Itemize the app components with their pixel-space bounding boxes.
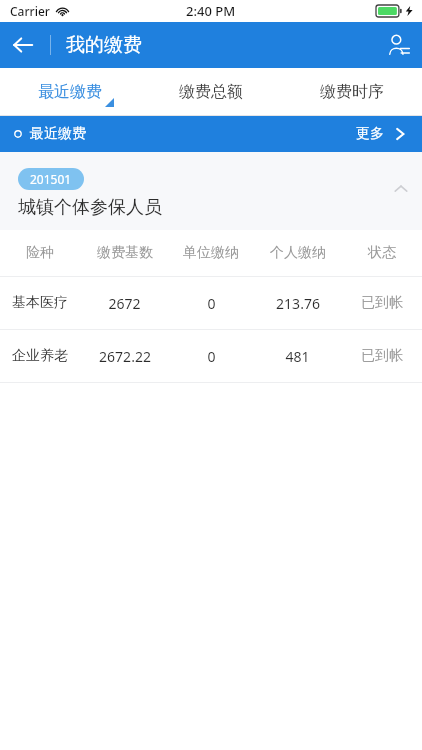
- staticText: 201501: [30, 171, 72, 187]
- staticText: 2:40 PM: [186, 2, 236, 20]
- staticText: 0: [207, 347, 216, 366]
- staticText: 最近缴费: [38, 82, 102, 102]
- staticText: 481: [285, 347, 310, 366]
- button[interactable]: 缴费总额: [140, 68, 281, 115]
- button[interactable]: Account: [376, 22, 422, 68]
- button[interactable]: 企业养老: [0, 330, 422, 382]
- staticText: 更多: [356, 125, 384, 143]
- staticText: 缴费总额: [179, 82, 243, 102]
- staticText: 险种: [26, 244, 54, 262]
- staticText: 已到帐: [361, 347, 403, 365]
- button[interactable]: 最近缴费: [0, 116, 422, 152]
- staticText: 缴费基数: [97, 244, 153, 262]
- staticText: 我的缴费: [66, 33, 142, 57]
- button[interactable]: Back: [0, 22, 46, 68]
- button[interactable]: 基本医疗: [0, 277, 422, 329]
- staticText: 基本医疗: [12, 294, 68, 312]
- staticText: 个人缴纳: [270, 244, 326, 262]
- staticText: 单位缴纳: [183, 244, 239, 262]
- staticText: 企业养老: [12, 347, 68, 365]
- button[interactable]: 缴费时序: [281, 68, 422, 115]
- staticText: 213.76: [276, 294, 320, 313]
- button[interactable]: 201501: [0, 152, 422, 230]
- button[interactable]: 最近缴费: [0, 68, 140, 115]
- staticText: Carrier: [10, 3, 50, 19]
- staticText: 最近缴费: [30, 125, 86, 143]
- staticText: 城镇个体参保人员: [18, 196, 162, 219]
- staticText: 状态: [368, 244, 396, 262]
- staticText: 2672: [108, 294, 141, 313]
- staticText: 缴费时序: [320, 82, 384, 102]
- staticText: 0: [207, 294, 216, 313]
- staticText: 2672.22: [99, 347, 151, 366]
- staticText: 已到帐: [361, 294, 403, 312]
